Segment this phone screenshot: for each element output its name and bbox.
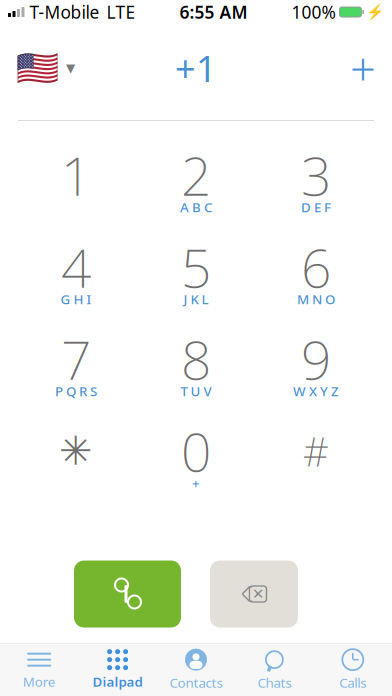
staticText: G H I bbox=[60, 290, 91, 308]
staticText: 100% bbox=[291, 0, 335, 23]
button[interactable]: 8 bbox=[136, 323, 256, 411]
staticText: ⚡ bbox=[366, 4, 384, 20]
staticText: LTE bbox=[106, 0, 135, 23]
button[interactable]: 7 bbox=[16, 323, 136, 411]
staticText: 6 bbox=[301, 232, 331, 302]
staticText: J K L bbox=[183, 290, 208, 308]
staticText: T-Mobile bbox=[29, 0, 99, 23]
button[interactable]: Chats bbox=[235, 645, 314, 695]
button[interactable]: 2 bbox=[136, 139, 256, 227]
staticText: A B C bbox=[180, 198, 212, 216]
button[interactable]: +1 bbox=[136, 46, 256, 90]
staticText: # bbox=[303, 424, 329, 477]
button[interactable]: ✳ bbox=[16, 415, 136, 503]
button[interactable]: 9 bbox=[256, 323, 376, 411]
button[interactable]: Dialpad bbox=[78, 645, 157, 695]
staticText: 9 bbox=[301, 324, 331, 394]
staticText: Contacts bbox=[169, 674, 222, 691]
staticText: 🇺🇸 bbox=[16, 48, 59, 88]
staticText: 7 bbox=[61, 324, 91, 394]
staticText: 1 bbox=[61, 140, 91, 210]
staticText: 5 bbox=[181, 232, 211, 302]
staticText: Dialpad bbox=[93, 673, 143, 690]
staticText: D E F bbox=[301, 198, 331, 216]
button[interactable]: Select country code bbox=[6, 38, 85, 98]
staticText: + bbox=[350, 38, 376, 98]
button[interactable]: Add contact bbox=[340, 45, 386, 91]
button[interactable]: 1 bbox=[16, 139, 136, 227]
staticText: 3 bbox=[301, 140, 331, 210]
staticText: +1 bbox=[175, 44, 217, 92]
staticText: 4 bbox=[61, 232, 91, 302]
staticText: W X Y Z bbox=[293, 382, 339, 400]
button[interactable]: Delete bbox=[210, 560, 298, 627]
staticText: ✕ bbox=[252, 586, 264, 602]
staticText: 6:55 AM bbox=[179, 0, 247, 23]
staticText: 8 bbox=[181, 324, 211, 394]
staticText: 0 bbox=[181, 416, 211, 486]
button[interactable]: Contacts bbox=[157, 645, 235, 695]
button[interactable]: # bbox=[256, 415, 376, 503]
staticText: Chats bbox=[257, 674, 291, 691]
button[interactable]: 6 bbox=[256, 231, 376, 319]
button[interactable]: Calls bbox=[314, 645, 392, 695]
staticText: ▼ bbox=[66, 61, 75, 75]
button[interactable]: 5 bbox=[136, 231, 256, 319]
button[interactable]: 3 bbox=[256, 139, 376, 227]
button[interactable]: More bbox=[0, 645, 78, 695]
staticText: ✳ bbox=[59, 428, 93, 474]
button[interactable]: 4 bbox=[16, 231, 136, 319]
staticText: More bbox=[23, 673, 56, 690]
staticText: Calls bbox=[339, 674, 366, 691]
staticText: T U V bbox=[180, 382, 211, 400]
staticText: M N O bbox=[297, 290, 335, 308]
button[interactable]: 0 bbox=[136, 415, 256, 503]
staticText: 2 bbox=[181, 140, 211, 210]
staticText: + bbox=[192, 474, 200, 492]
button[interactable]: Call bbox=[74, 560, 181, 627]
staticText: P Q R S bbox=[55, 382, 97, 400]
